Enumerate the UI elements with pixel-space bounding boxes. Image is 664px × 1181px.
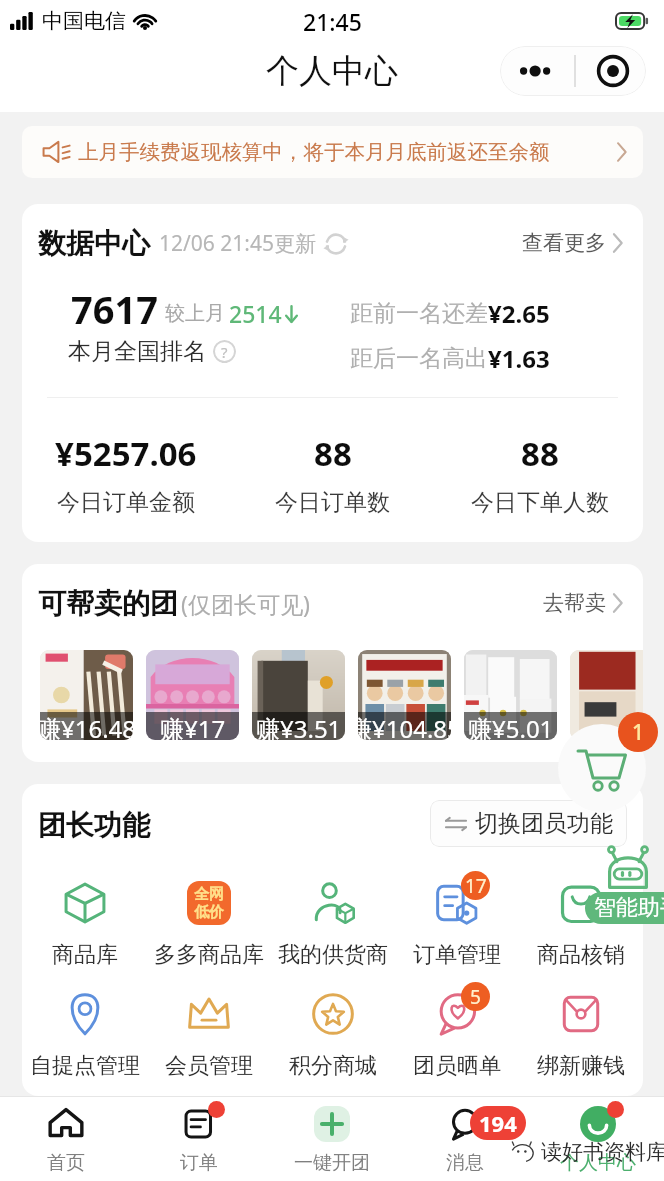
staticText: 赚¥104.85 — [358, 712, 451, 740]
button[interactable]: 88 — [436, 431, 643, 517]
button[interactable]: 商品核销 — [519, 877, 643, 969]
staticText: 一键开团 — [294, 1151, 370, 1175]
staticText: 团员晒单 — [413, 1052, 501, 1080]
button[interactable]: 智能助手 — [585, 892, 664, 924]
staticText: 首页 — [47, 1151, 85, 1175]
staticText: ¥1.63 — [488, 342, 550, 375]
staticText: 距前一名还差 — [350, 299, 488, 328]
staticText: 去帮卖 — [543, 590, 606, 616]
staticText: 订单管理 — [413, 941, 501, 969]
button[interactable]: 我的供货商 — [271, 877, 395, 969]
staticText: 绑新赚钱 — [537, 1052, 625, 1080]
staticText: 赚¥5.01 — [468, 712, 554, 740]
staticText: 可帮卖的团 — [38, 586, 178, 621]
staticText: 团长功能 — [38, 808, 150, 843]
staticText: (仅团长可见) — [181, 588, 310, 619]
button[interactable]: ¥5257.06 — [22, 431, 229, 517]
staticText: 2514 — [229, 298, 282, 329]
staticText: 会员管理 — [165, 1052, 253, 1080]
staticText: 智能助手 — [594, 894, 664, 922]
button[interactable]: 自提点管理 — [22, 988, 147, 1080]
button[interactable]: 一键开团 — [265, 1096, 398, 1181]
staticText: 17 — [465, 873, 487, 899]
staticText: 全网 低价 — [194, 885, 224, 921]
staticText: 切换团员功能 — [475, 809, 613, 838]
staticText: 个人中心 — [266, 50, 398, 92]
staticText: ? — [221, 342, 228, 362]
staticText: 数据中心 — [38, 226, 150, 261]
staticText: 商品核销 — [537, 941, 625, 969]
staticText: 赚¥3.51 — [256, 712, 342, 740]
button[interactable]: 首页 — [0, 1096, 132, 1181]
button[interactable]: 88 — [229, 431, 436, 517]
staticText: 距后一名高出 — [350, 344, 488, 373]
button[interactable] — [570, 650, 643, 740]
staticText: 中国电信 — [42, 8, 126, 34]
staticText: 赚¥16.48 — [40, 712, 133, 740]
staticText: 本月全国排名 — [68, 337, 206, 366]
button[interactable]: 5 — [395, 988, 519, 1080]
button[interactable]: 赚¥104.85 — [358, 650, 451, 740]
button[interactable]: 绑新赚钱 — [519, 988, 643, 1080]
button[interactable]: 购物车 — [558, 724, 646, 812]
staticText: 积分商城 — [289, 1052, 377, 1080]
staticText: 较上月 — [165, 301, 225, 326]
staticText: 赚¥17 — [160, 712, 226, 740]
button[interactable]: 赚¥5.01 — [464, 650, 557, 740]
staticText: 7617 — [71, 283, 158, 335]
staticText: 21:45 — [303, 6, 362, 37]
button[interactable]: 个人中心 — [531, 1096, 664, 1181]
staticText: 订单 — [180, 1151, 218, 1175]
staticText: ¥5257.06 — [55, 431, 197, 476]
button[interactable]: 订单 — [132, 1096, 265, 1181]
staticText: 今日下单人数 — [471, 488, 609, 517]
button[interactable]: 赚¥17 — [146, 650, 239, 740]
button[interactable]: 去帮卖 — [543, 590, 623, 616]
staticText: 88 — [521, 431, 559, 476]
button[interactable]: 赚¥3.51 — [252, 650, 345, 740]
staticText: 今日订单金额 — [57, 488, 195, 517]
button[interactable]: 全网 低价 — [147, 877, 271, 969]
staticText: 今日订单数 — [275, 488, 390, 517]
staticText: 194 — [479, 1108, 517, 1138]
button[interactable]: 积分商城 — [271, 988, 395, 1080]
button[interactable]: 切换团员功能 — [430, 800, 627, 847]
staticText: ¥2.65 — [488, 297, 550, 330]
staticText: 我的供货商 — [278, 941, 388, 969]
button[interactable]: 消息 — [398, 1096, 531, 1181]
button[interactable]: 查看更多 — [522, 230, 623, 256]
button[interactable]: 上月手续费返现核算中，将于本月月底前返还至余额 — [22, 126, 643, 178]
staticText: 上月手续费返现核算中，将于本月月底前返还至余额 — [78, 139, 550, 165]
staticText: 查看更多 — [522, 230, 606, 256]
button[interactable]: 17 — [395, 877, 519, 969]
staticText: 多多商品库 — [154, 941, 264, 969]
staticText: 个人中心 — [560, 1151, 636, 1175]
button[interactable]: 赚¥16.48 — [40, 650, 133, 740]
button[interactable]: 会员管理 — [147, 988, 271, 1080]
staticText: 12/06 21:45更新 — [159, 229, 316, 258]
button[interactable]: 更多 — [500, 46, 646, 96]
staticText: 1 — [632, 718, 645, 747]
staticText: 5 — [470, 984, 481, 1010]
button[interactable]: 商品库 — [22, 877, 147, 969]
staticText: 自提点管理 — [30, 1052, 140, 1080]
staticText: 商品库 — [52, 941, 118, 969]
staticText: 读好书资料库 — [541, 1139, 664, 1165]
staticText: 88 — [314, 431, 352, 476]
staticText: 消息 — [446, 1151, 484, 1175]
